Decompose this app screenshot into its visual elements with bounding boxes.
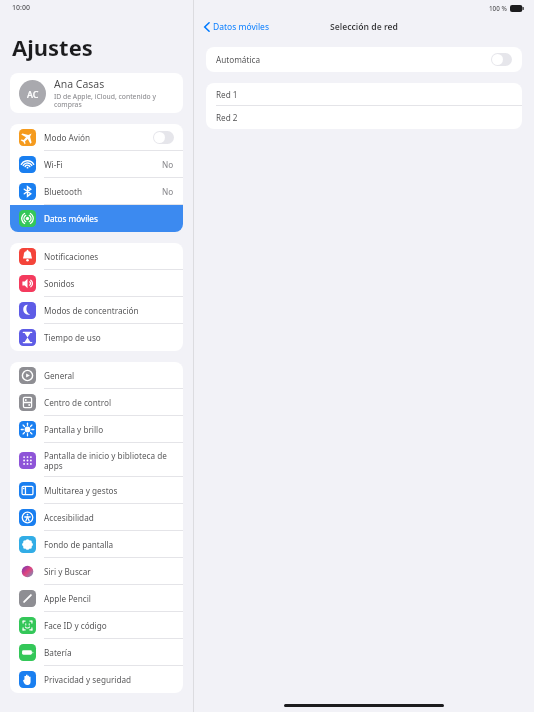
button[interactable]: Datos móviles (10, 205, 183, 232)
staticText: Pantalla y brillo (44, 424, 174, 435)
staticText: Privacidad y seguridad (44, 674, 174, 685)
staticText: Centro de control (44, 397, 174, 408)
button[interactable]: Automática (206, 47, 522, 72)
staticText: Face ID y código (44, 620, 174, 631)
staticText: Red 2 (216, 112, 238, 123)
button[interactable]: Datos móviles (194, 18, 275, 36)
staticText: Sonidos (44, 278, 174, 289)
staticText: 10:00 (12, 3, 30, 13)
staticText: Multitarea y gestos (44, 485, 174, 496)
button[interactable]: Batería (10, 639, 183, 666)
button[interactable]: Notificaciones (10, 243, 183, 270)
staticText: 100 % (489, 4, 507, 13)
staticText: Accesibilidad (44, 512, 174, 523)
staticText: No (162, 186, 174, 197)
staticText: Modos de concentración (44, 305, 174, 316)
button[interactable]: Red 2 (206, 106, 522, 129)
staticText: Ajustes (12, 32, 93, 62)
button[interactable]: Accesibilidad (10, 504, 183, 531)
staticText: Red 1 (216, 89, 238, 100)
button[interactable]: Apple Pencil (10, 585, 183, 612)
staticText: Bluetooth (44, 186, 162, 197)
button[interactable]: Sonidos (10, 270, 183, 297)
staticText: Selección de red (330, 21, 398, 33)
button[interactable]: Bluetooth (10, 178, 183, 205)
staticText: Tiempo de uso (44, 332, 174, 343)
button[interactable]: Pantalla y brillo (10, 416, 183, 443)
button[interactable]: Siri y Buscar (10, 558, 183, 585)
staticText: Apple Pencil (44, 593, 174, 604)
button[interactable]: Multitarea y gestos (10, 477, 183, 504)
staticText: Pantalla de inicio y biblioteca de apps (44, 450, 174, 471)
button[interactable]: General (10, 362, 183, 389)
staticText: General (44, 370, 174, 381)
staticText: Fondo de pantalla (44, 539, 174, 550)
button[interactable]: Tiempo de uso (10, 324, 183, 351)
button[interactable]: Wi-Fi (10, 151, 183, 178)
button[interactable]: Automática (491, 53, 512, 66)
button[interactable]: Modo Avión (10, 124, 183, 151)
button[interactable]: Fondo de pantalla (10, 531, 183, 558)
staticText: Batería (44, 647, 174, 658)
button[interactable]: AC (10, 73, 183, 113)
button[interactable]: Centro de control (10, 389, 183, 416)
button[interactable]: Pantalla de inicio y biblioteca de apps (10, 443, 183, 477)
staticText: Automática (216, 54, 491, 65)
staticText: Datos móviles (44, 213, 174, 224)
staticText: Modo Avión (44, 132, 153, 143)
button[interactable]: Modo Avión (153, 131, 174, 144)
button[interactable]: Privacidad y seguridad (10, 666, 183, 693)
staticText: Notificaciones (44, 251, 174, 262)
staticText: ID de Apple, iCloud, contenido y compras (54, 92, 174, 109)
staticText: No (162, 159, 174, 170)
staticText: Datos móviles (213, 21, 269, 33)
staticText: Wi-Fi (44, 159, 162, 170)
button[interactable]: Red 1 (206, 83, 522, 106)
staticText: Siri y Buscar (44, 566, 174, 577)
staticText: AC (27, 88, 39, 100)
button[interactable]: Face ID y código (10, 612, 183, 639)
staticText: Ana Casas (54, 77, 105, 91)
button[interactable]: Modos de concentración (10, 297, 183, 324)
